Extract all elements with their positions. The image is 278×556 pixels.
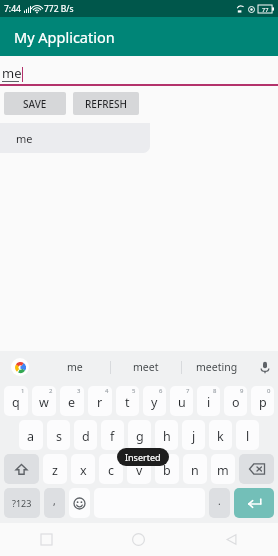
button[interactable]: SAVE	[4, 92, 66, 115]
staticText: My Application	[14, 27, 115, 47]
staticText: 0	[267, 387, 271, 395]
staticText: 5	[132, 387, 136, 395]
button[interactable]: ,	[44, 488, 65, 518]
button[interactable]: i	[197, 386, 220, 416]
staticText: k	[217, 428, 224, 445]
button[interactable]: v	[127, 454, 151, 484]
button[interactable]: t	[116, 386, 139, 416]
staticText: 1	[21, 387, 25, 395]
staticText: t	[125, 394, 130, 411]
button[interactable]: Symbols	[4, 488, 40, 518]
button[interactable]: e	[60, 386, 84, 416]
button[interactable]: me	[40, 351, 110, 383]
button[interactable]: Emoji	[69, 488, 90, 518]
button[interactable]: x	[71, 454, 95, 484]
button[interactable]: y	[143, 386, 166, 416]
button[interactable]: p	[251, 386, 274, 416]
staticText: c	[108, 462, 115, 479]
staticText: f	[110, 428, 115, 445]
staticText: 4	[105, 387, 109, 395]
staticText: w	[39, 394, 49, 411]
button[interactable]: u	[170, 386, 193, 416]
button[interactable]: Shift	[4, 454, 39, 484]
button[interactable]: l	[236, 420, 259, 450]
staticText: .	[218, 494, 221, 508]
button[interactable]: h	[155, 420, 178, 450]
staticText: 2	[49, 387, 53, 395]
button[interactable]: Recents	[0, 523, 92, 556]
staticText: o	[232, 394, 240, 411]
staticText: me	[2, 64, 22, 82]
staticText: REFRESH	[85, 97, 128, 111]
staticText: 772 B/s	[44, 3, 74, 15]
staticText: b	[163, 462, 171, 479]
staticText: me	[16, 131, 33, 146]
button[interactable]: o	[224, 386, 247, 416]
staticText: u	[178, 394, 186, 411]
staticText: s	[56, 428, 62, 445]
button[interactable]: f	[101, 420, 124, 450]
button[interactable]: Voice input	[252, 351, 278, 383]
button[interactable]: s	[47, 420, 70, 450]
staticText: j	[192, 428, 196, 445]
button[interactable]: m	[211, 454, 235, 484]
staticText: 6	[159, 387, 163, 395]
button[interactable]: j	[182, 420, 205, 450]
button[interactable]: b	[155, 454, 179, 484]
staticText: a	[27, 428, 35, 445]
staticText: z	[52, 462, 58, 479]
staticText: Inserted	[125, 451, 161, 463]
staticText: r	[97, 394, 103, 411]
staticText: 7	[186, 387, 190, 395]
staticText: meeting	[196, 360, 238, 374]
button[interactable]: n	[183, 454, 207, 484]
staticText: d	[82, 428, 90, 445]
button[interactable]: w	[32, 386, 56, 416]
button[interactable]: g	[128, 420, 151, 450]
staticText: meet	[133, 360, 159, 374]
staticText: 8	[213, 387, 217, 395]
button[interactable]: Google	[0, 351, 40, 383]
staticText: SAVE	[23, 97, 47, 111]
staticText: x	[80, 462, 87, 479]
staticText: h	[163, 428, 171, 445]
button[interactable]: k	[209, 420, 232, 450]
staticText: 9	[240, 387, 244, 395]
staticText: 77	[262, 6, 269, 13]
button[interactable]: r	[88, 386, 112, 416]
staticText: g	[136, 428, 144, 445]
button[interactable]: meet	[111, 351, 181, 383]
button[interactable]: Backspace	[239, 454, 274, 484]
button[interactable]: q	[4, 386, 28, 416]
staticText: 7:44	[4, 3, 21, 15]
button[interactable]: z	[43, 454, 67, 484]
staticText: v	[136, 462, 143, 479]
button[interactable]: Enter	[234, 488, 274, 518]
staticText: ?123	[12, 497, 32, 509]
staticText: p	[259, 394, 267, 411]
staticText: n	[191, 462, 199, 479]
button[interactable]: me	[0, 123, 150, 153]
staticText: i	[207, 394, 211, 411]
staticText: me	[67, 360, 83, 374]
button[interactable]: a	[19, 420, 43, 450]
staticText: 3	[77, 387, 81, 395]
button[interactable]: d	[74, 420, 97, 450]
staticText: ,	[53, 494, 56, 508]
button[interactable]: c	[99, 454, 123, 484]
staticText: e	[68, 394, 76, 411]
button[interactable]: .	[209, 488, 230, 518]
staticText: y	[151, 394, 158, 411]
staticText: l	[246, 428, 250, 445]
button[interactable]: REFRESH	[73, 92, 139, 115]
staticText: q	[12, 394, 20, 411]
button[interactable]: meeting	[182, 351, 252, 383]
staticText: m	[217, 462, 229, 479]
